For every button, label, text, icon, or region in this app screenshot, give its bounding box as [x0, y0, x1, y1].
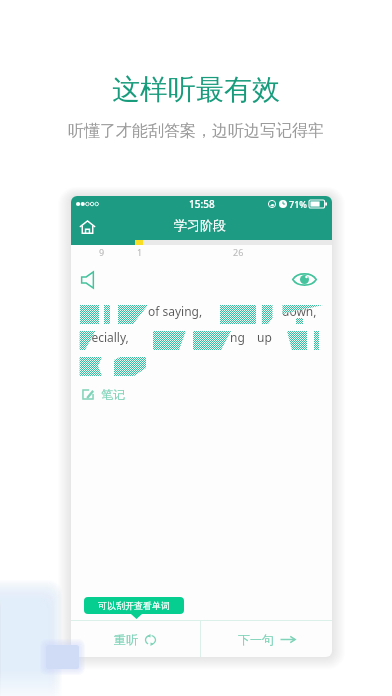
button[interactable]: 笔记: [78, 385, 133, 404]
button[interactable]: Show answer: [289, 264, 319, 294]
staticText: 听懂了才能刮答案，边听边写记得牢: [0, 121, 392, 141]
button[interactable]: Home: [75, 215, 99, 239]
staticText: 笔记: [101, 387, 125, 402]
staticText: 71%: [289, 198, 307, 210]
staticText: 15:58: [189, 197, 215, 211]
staticText: 26: [233, 246, 244, 258]
button[interactable]: 下一句: [201, 621, 332, 657]
staticText: 下一句: [238, 632, 274, 647]
staticText: s.: [133, 355, 142, 371]
staticText: 9: [99, 246, 105, 258]
staticText: down,: [282, 303, 317, 319]
staticText: y: [131, 303, 138, 319]
staticText: up: [257, 329, 272, 345]
staticText: 这样听最有效: [0, 72, 392, 107]
staticText: 重听: [114, 632, 138, 647]
button[interactable]: Play audio: [72, 265, 102, 295]
staticText: 1: [137, 246, 143, 258]
staticText: ng: [230, 329, 245, 345]
button[interactable]: 可以刮开查看单词: [84, 597, 184, 614]
button[interactable]: 重听: [71, 621, 200, 657]
staticText: 学习阶段: [174, 217, 226, 233]
staticText: pecially,: [84, 329, 129, 345]
staticText: 可以刮开查看单词: [98, 600, 170, 611]
staticText: of saying,: [148, 303, 203, 319]
